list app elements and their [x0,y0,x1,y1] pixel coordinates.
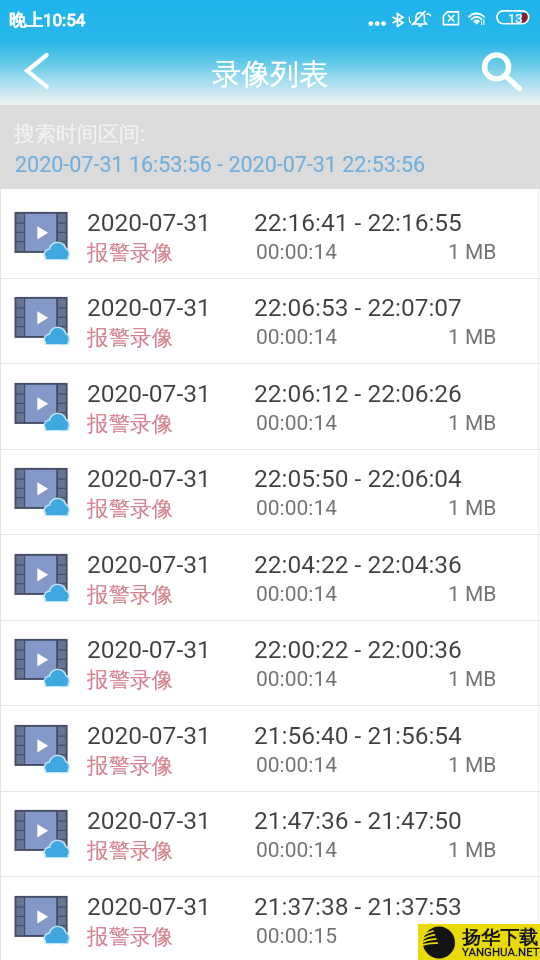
staticText: 00:00:14 [256,240,337,265]
staticText: 搜索时间区间: [14,121,146,147]
staticText: 报警录像 [87,410,173,437]
staticText: 00:00:14 [256,753,337,778]
button[interactable]: 2020-07-31 [0,621,540,706]
button[interactable]: Search [470,36,540,105]
staticText: 2020-07-31 [87,550,211,579]
staticText: 1 MB [448,411,497,436]
staticText: 2020-07-31 [87,208,211,237]
staticText: 22:06:53 - 22:07:07 [254,293,462,322]
staticText: 00:00:14 [256,325,337,350]
staticText: 00:00:14 [256,582,337,607]
staticText: 2020-07-31 [87,806,211,835]
staticText: 1 MB [448,496,497,521]
staticText: 1 MB [448,667,497,692]
staticText: 报警录像 [87,752,173,779]
staticText: 21:56:40 - 21:56:54 [254,721,462,750]
staticText: 22:05:50 - 22:06:04 [254,464,462,493]
button[interactable]: 2020-07-31 [0,792,540,877]
staticText: 报警录像 [87,666,173,693]
staticText: 2020-07-31 [87,293,211,322]
staticText: 报警录像 [87,239,173,266]
staticText: 1 MB [448,924,497,949]
staticText: 13 [508,11,523,26]
staticText: 22:04:22 - 22:04:36 [254,550,462,579]
button[interactable]: 2020-07-31 [0,707,540,792]
staticText: 报警录像 [87,581,173,608]
button[interactable]: 2020-07-31 [0,194,540,279]
button[interactable]: 2020-07-31 [0,365,540,450]
button[interactable]: 2020-07-31 [0,450,540,535]
button[interactable]: Back [0,36,72,105]
staticText: 2020-07-31 [87,379,211,408]
staticText: 00:00:14 [256,838,337,863]
staticText: 00:00:14 [256,411,337,436]
staticText: 2020-07-31 [87,464,211,493]
staticText: YANGHUA.NET [462,945,540,958]
staticText: 21:47:36 - 21:47:50 [254,806,462,835]
staticText: 21:37:38 - 21:37:53 [254,892,462,921]
staticText: 22:00:22 - 22:00:36 [254,635,462,664]
staticText: 录像列表 [212,56,328,93]
staticText: 2020-07-31 [87,721,211,750]
staticText: 00:00:14 [256,496,337,521]
staticText: 22:16:41 - 22:16:55 [254,208,462,237]
staticText: 22:06:12 - 22:06:26 [254,379,462,408]
staticText: 1 MB [448,325,497,350]
staticText: 报警录像 [87,923,173,950]
staticText: 2020-07-31 16:53:56 - 2020-07-31 22:53:5… [15,152,426,177]
staticText: 报警录像 [87,324,173,351]
button[interactable]: 2020-07-31 [0,536,540,621]
staticText: 1 MB [448,240,497,265]
staticText: 扬华下载 [462,926,538,950]
staticText: 00:00:14 [256,667,337,692]
button[interactable]: 2020-07-31 [0,878,540,960]
staticText: 2020-07-31 [87,892,211,921]
staticText: 1 MB [448,753,497,778]
staticText: 报警录像 [87,495,173,522]
button[interactable]: 2020-07-31 [0,279,540,364]
staticText: 晚上10:54 [9,10,86,31]
staticText: 1 MB [448,582,497,607]
staticText: 00:00:15 [256,924,337,949]
staticText: 1 MB [448,838,497,863]
staticText: 2020-07-31 [87,635,211,664]
staticText: 报警录像 [87,837,173,864]
